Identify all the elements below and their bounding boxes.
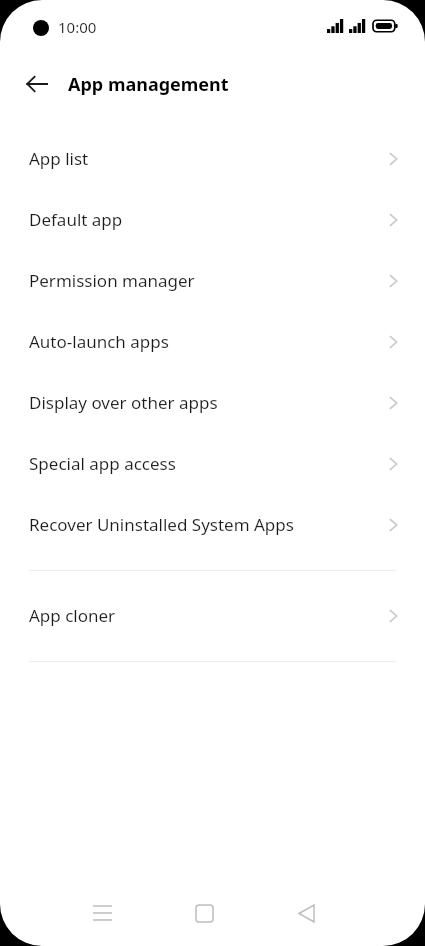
staticText: Special app access [29, 452, 389, 475]
staticText: Permission manager [29, 269, 389, 292]
button[interactable]: Auto-launch apps [0, 311, 425, 372]
button[interactable]: App cloner [0, 585, 425, 646]
staticText: Display over other apps [29, 391, 389, 414]
button[interactable]: Back [282, 889, 330, 937]
staticText: 10:00 [58, 17, 97, 37]
button[interactable]: Special app access [0, 433, 425, 494]
staticText: App management [68, 72, 229, 97]
staticText: App list [29, 147, 389, 170]
staticText: Default app [29, 208, 389, 231]
button[interactable]: Home [180, 889, 228, 937]
staticText: Auto-launch apps [29, 330, 389, 353]
button[interactable]: Permission manager [0, 250, 425, 311]
staticText: Recover Uninstalled System Apps [29, 513, 389, 536]
staticText: App cloner [29, 604, 389, 627]
button[interactable]: Recover Uninstalled System Apps [0, 494, 425, 555]
button[interactable]: Recent apps [78, 889, 126, 937]
button[interactable]: Display over other apps [0, 372, 425, 433]
button[interactable]: Back [17, 64, 57, 104]
button[interactable]: Default app [0, 189, 425, 250]
button[interactable]: App list [0, 128, 425, 189]
